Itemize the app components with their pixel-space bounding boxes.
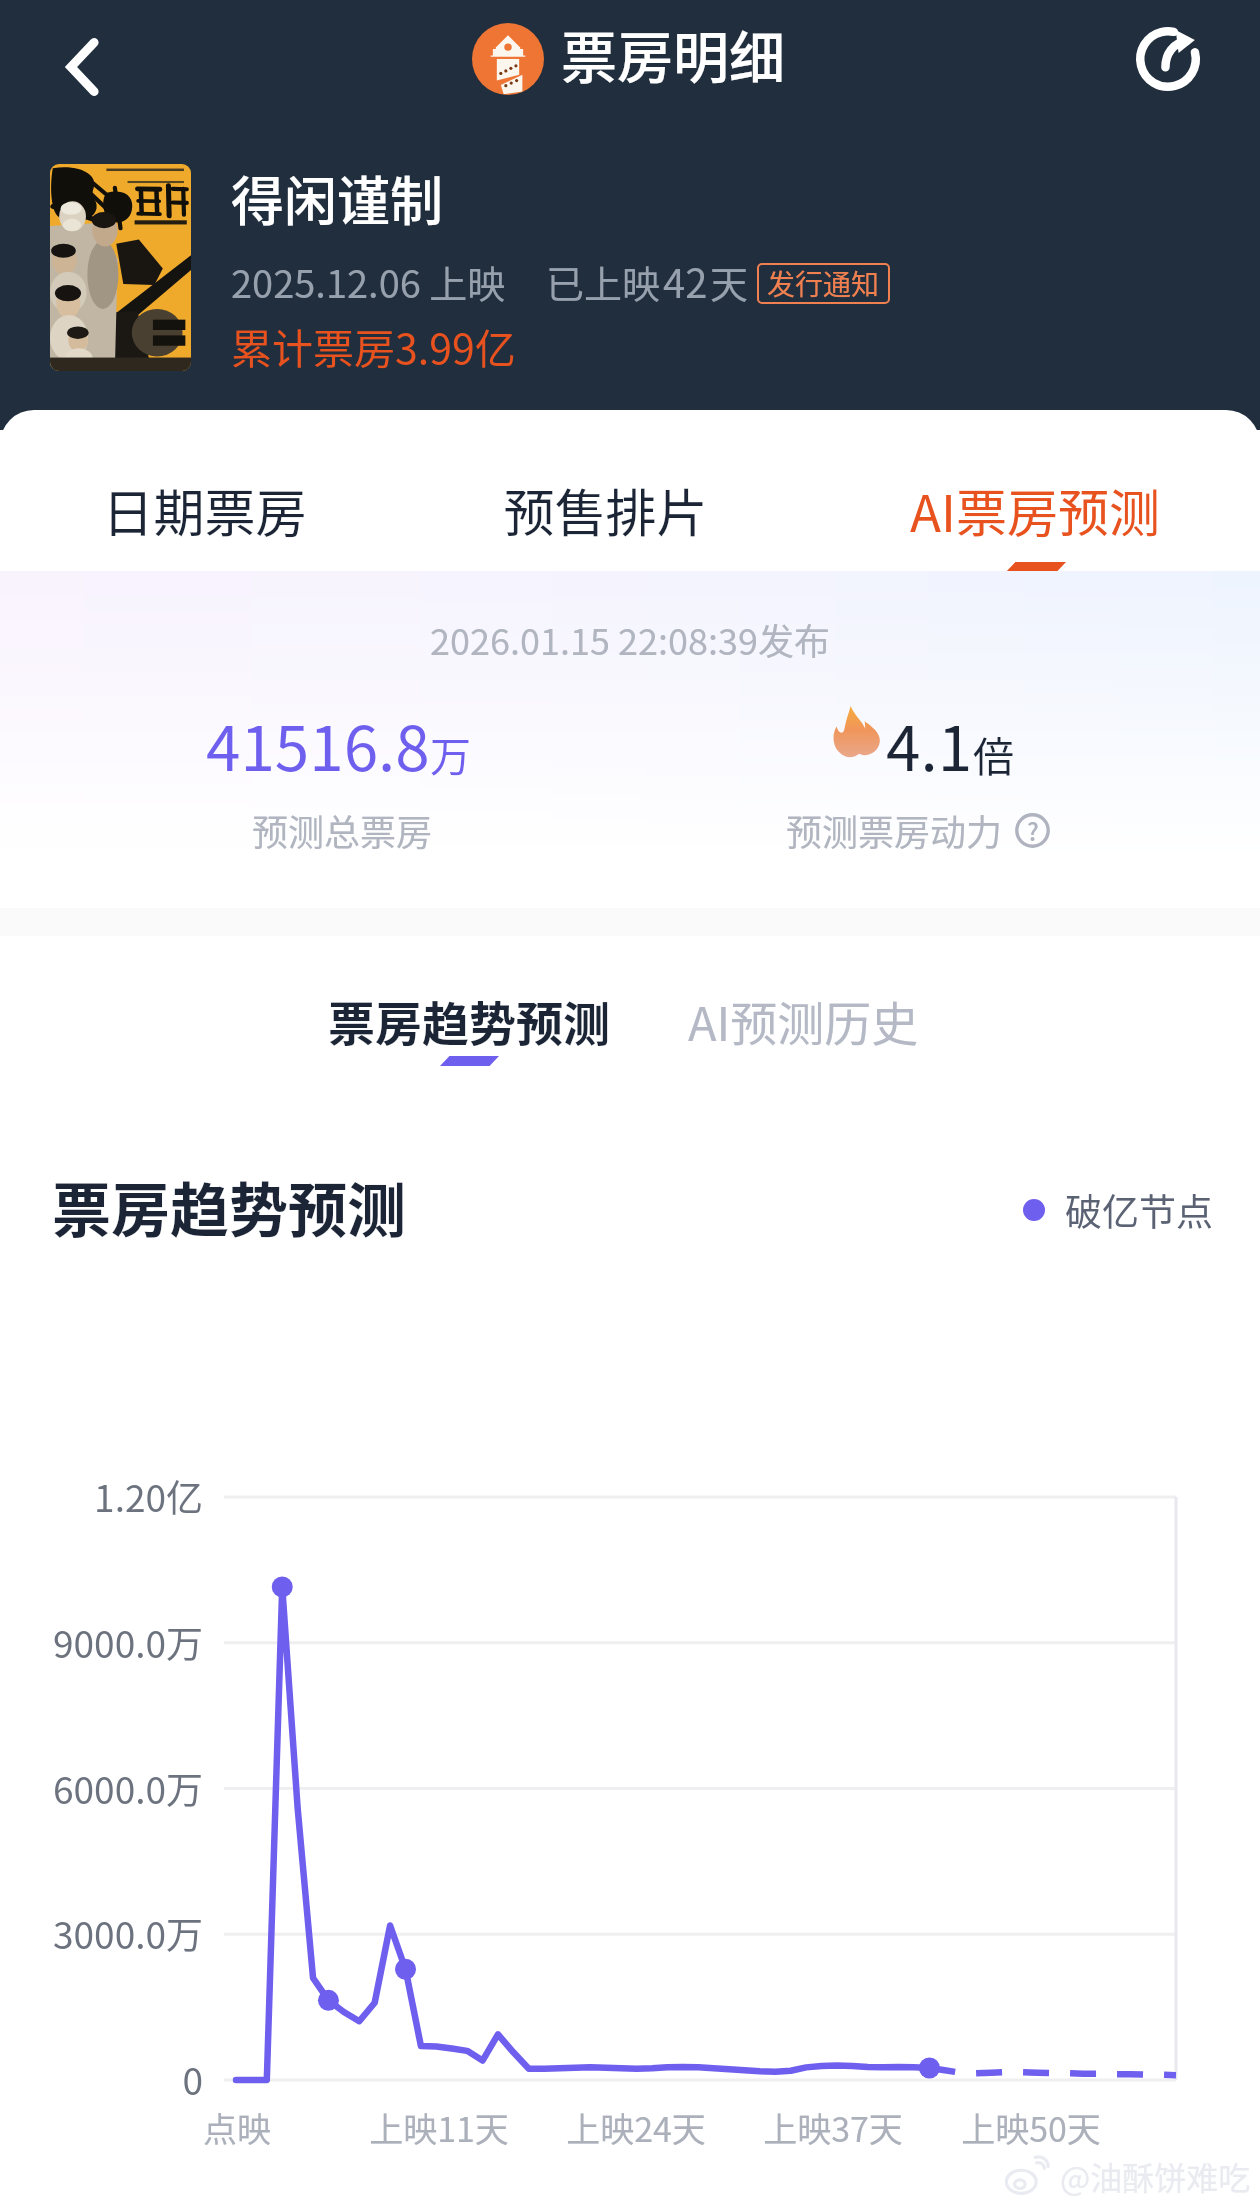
staticText: 2025.12.06 上映 [231,254,506,309]
staticText: 4.1 [886,699,973,789]
staticText: ? [1027,813,1039,848]
button[interactable]: 票房趋势预测 [328,986,610,1066]
staticText: 42 [663,252,708,310]
staticText: 票房趋势预测 [52,1164,407,1249]
staticText: 预测总票房 [252,804,433,856]
staticText: 已上映 [546,254,661,309]
staticText: 2026.01.15 22:08:39发布 [0,613,1260,665]
button[interactable]: AI预测历史 [688,986,919,1054]
button[interactable]: 日期票房 [44,432,364,587]
staticText: 上映50天 [901,2103,1161,2152]
staticText: 9000.0万 [0,1615,203,1669]
staticText: 发行通知 [767,263,880,304]
staticText: @油酥饼难吃 [1060,2153,1251,2199]
staticText: AI预测历史 [688,986,919,1054]
button[interactable]: 预售排片 [445,432,765,587]
staticText: 万 [430,724,471,783]
staticText: 日期票房 [102,473,307,547]
staticText: 累计票房3.99亿 [231,316,516,375]
button[interactable]: AI票房预测 [875,432,1195,587]
staticText: 预测票房动力 [786,804,1003,856]
staticText: 得闲谨制 [231,160,443,237]
staticText: 0 [0,2052,203,2106]
button[interactable]: Back [30,12,140,122]
staticText: 破亿节点 [1065,1183,1213,1237]
staticText: 票房趋势预测 [328,986,610,1054]
staticText: 点映 [107,2103,367,2152]
staticText: 天 [710,254,749,309]
staticText: 上映11天 [309,2103,569,2152]
staticText: AI票房预测 [910,473,1160,547]
staticText: 6000.0万 [0,1761,203,1815]
staticText: 1.20亿 [0,1469,203,1523]
staticText: 上映37天 [703,2103,963,2152]
staticText: 上映24天 [506,2103,766,2152]
button[interactable]: Refresh [1113,4,1223,114]
staticText: 倍 [973,724,1014,783]
staticText: 41516.8 [206,699,430,789]
staticText: 票房明细 [561,13,785,94]
staticText: 3000.0万 [0,1906,203,1960]
staticText: 预售排片 [503,473,708,547]
